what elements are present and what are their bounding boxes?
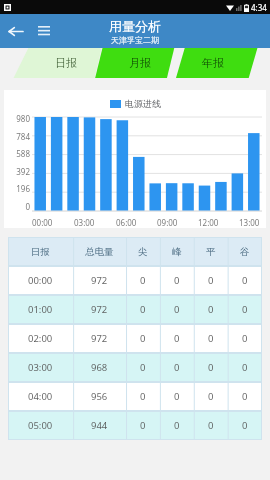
button[interactable]: 05:00 xyxy=(8,411,262,440)
staticText: 平 xyxy=(206,246,216,258)
staticText: 峰 xyxy=(172,246,182,258)
staticText: 01:00 xyxy=(28,303,53,316)
staticText: 03:00 xyxy=(74,217,95,228)
staticText: 04:00 xyxy=(28,390,53,403)
staticText: 谷 xyxy=(240,246,250,258)
staticText: 0 xyxy=(208,303,214,316)
staticText: 0 xyxy=(208,419,214,432)
staticText: 972 xyxy=(91,332,108,345)
staticText: 0 xyxy=(174,303,180,316)
staticText: 972 xyxy=(91,274,108,287)
staticText: 13:00 xyxy=(239,217,260,228)
button[interactable]: Menu xyxy=(31,18,57,44)
staticText: 0 xyxy=(242,303,248,316)
staticText: 天津孚宝二期 xyxy=(111,35,159,45)
staticText: 0 xyxy=(208,332,214,345)
button[interactable]: 04:00 xyxy=(8,382,262,411)
staticText: 电源进线 xyxy=(125,98,161,109)
staticText: 0 xyxy=(208,390,214,403)
button[interactable]: 03:00 xyxy=(8,353,262,382)
staticText: 年报 xyxy=(202,56,224,70)
staticText: 0 xyxy=(140,332,146,345)
staticText: 0 xyxy=(174,361,180,374)
staticText: 0 xyxy=(174,274,180,287)
staticText: 4:34 xyxy=(251,2,267,13)
button[interactable]: 02:00 xyxy=(8,324,262,353)
staticText: 0 xyxy=(25,201,30,212)
staticText: 12:00 xyxy=(198,217,219,228)
staticText: 588 xyxy=(16,148,30,159)
staticText: 0 xyxy=(242,419,248,432)
staticText: 0 xyxy=(242,332,248,345)
button[interactable]: 01:00 xyxy=(8,295,262,324)
staticText: 02:00 xyxy=(28,332,53,345)
staticText: 0 xyxy=(242,390,248,403)
button[interactable]: Back xyxy=(0,17,27,45)
staticText: 956 xyxy=(91,390,108,403)
button[interactable]: 年报 xyxy=(176,48,249,78)
button[interactable]: 00:00 xyxy=(8,266,262,295)
staticText: 尖 xyxy=(138,246,148,258)
staticText: 0 xyxy=(140,361,146,374)
staticText: 05:00 xyxy=(28,419,53,432)
staticText: 944 xyxy=(91,419,108,432)
staticText: 972 xyxy=(91,303,108,316)
staticText: 00:00 xyxy=(32,217,53,228)
staticText: 03:00 xyxy=(28,361,53,374)
staticText: 0 xyxy=(208,274,214,287)
staticText: 0 xyxy=(174,419,180,432)
staticText: 0 xyxy=(208,361,214,374)
staticText: 0 xyxy=(242,361,248,374)
staticText: 392 xyxy=(16,166,30,177)
staticText: 0 xyxy=(140,303,146,316)
staticText: 00:00 xyxy=(28,274,53,287)
staticText: 06:00 xyxy=(116,217,137,228)
button[interactable]: 月报 xyxy=(103,48,176,78)
staticText: 968 xyxy=(91,361,108,374)
staticText: 0 xyxy=(140,390,146,403)
staticText: 0 xyxy=(140,419,146,432)
staticText: 784 xyxy=(16,131,30,142)
staticText: 日报 xyxy=(31,246,50,258)
staticText: 日报 xyxy=(55,56,77,70)
staticText: 月报 xyxy=(129,56,151,70)
staticText: 980 xyxy=(16,113,30,124)
button[interactable]: 日报 xyxy=(29,48,103,78)
staticText: 09:00 xyxy=(157,217,178,228)
staticText: 0 xyxy=(174,390,180,403)
staticText: 0 xyxy=(174,332,180,345)
staticText: 196 xyxy=(16,183,30,194)
staticText: 总电量 xyxy=(85,246,114,258)
staticText: 0 xyxy=(242,274,248,287)
button[interactable]: 日报 xyxy=(8,237,262,266)
staticText: 0 xyxy=(140,274,146,287)
staticText: 用量分析 xyxy=(109,18,161,34)
